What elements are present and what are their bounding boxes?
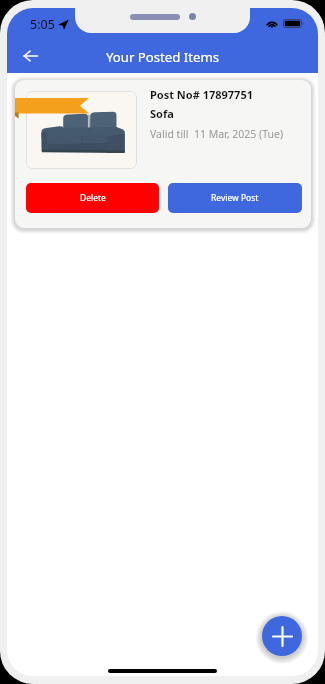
staticText: Your Posted Items	[106, 48, 220, 66]
button[interactable]: Back	[17, 43, 43, 69]
button[interactable]: Add new post	[262, 616, 302, 656]
staticText: Review Post	[211, 192, 259, 204]
staticText: Valid till 11 Mar, 2025 (Tue)	[150, 127, 284, 141]
staticText: 5:05	[30, 16, 55, 33]
staticText: Delete	[80, 192, 106, 204]
button[interactable]: Post No# 17897751	[15, 80, 311, 228]
staticText: Post No# 17897751	[150, 87, 253, 102]
staticText: Sofa	[150, 106, 174, 121]
button[interactable]: Review Post	[168, 183, 302, 213]
button[interactable]: Delete	[26, 183, 159, 213]
